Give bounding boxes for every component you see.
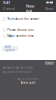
button[interactable]: Next [45,6,53,11]
button[interactable]: Add option [2,46,18,51]
staticText: you vote in this poll. [2,70,32,74]
button[interactable]: Cancel [45,61,54,65]
button[interactable]: Think about the answer [0,17,56,21]
staticText: Share poll [20,81,35,84]
staticText: Next [45,6,53,11]
staticText: Maybe another time [7,34,34,38]
staticText: Please choose one [7,28,34,32]
staticText: Everyone can see how [2,66,32,69]
staticText: Cancel [3,6,15,11]
staticText: Add option [5,45,15,52]
button[interactable]: Cancel [3,6,15,11]
staticText: New Poll [26,3,34,14]
staticText: Think about the answer [7,17,39,21]
staticText: Tap to continue [17,77,39,80]
staticText: Cancel [45,61,54,65]
button[interactable]: Maybe another time [0,34,56,38]
button[interactable]: Please choose one [0,28,56,32]
staticText: 9:41 [3,0,10,5]
